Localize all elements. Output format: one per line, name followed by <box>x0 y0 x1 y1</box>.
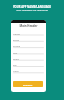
staticText: Main Header <box>11 24 46 28</box>
staticText: YOUR APP NAME/LANGUAGE <box>0 5 64 9</box>
button[interactable]: Note <box>11 69 46 73</box>
staticText: Name <box>13 32 20 35</box>
button[interactable]: Email <box>11 38 46 42</box>
button[interactable]: Phone <box>11 44 46 48</box>
button[interactable]: SUBMIT <box>13 81 43 87</box>
staticText: Phone <box>13 44 21 47</box>
button[interactable]: City <box>11 51 46 55</box>
button[interactable]: State <box>11 57 46 61</box>
staticText: Zip <box>13 63 17 66</box>
staticText: Your available for everyone <box>0 8 64 11</box>
staticText: SUBMIT <box>23 83 33 86</box>
staticText: Email <box>13 38 20 41</box>
button[interactable]: Name <box>11 32 46 36</box>
button[interactable]: Zip <box>11 63 46 67</box>
staticText: Note <box>13 69 19 72</box>
staticText: State <box>13 57 19 60</box>
staticText: City <box>13 51 18 54</box>
